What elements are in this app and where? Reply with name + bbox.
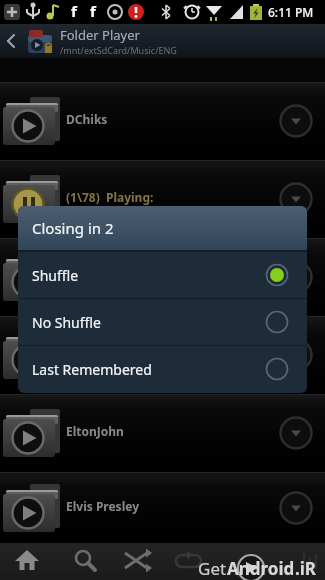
button[interactable]: Last Remembered: [18, 346, 307, 392]
button[interactable]: [0, 543, 55, 580]
button[interactable]: [0, 316, 325, 394]
button[interactable]: No Shuffle: [18, 299, 307, 345]
staticText: EltonJohn: [66, 423, 124, 439]
button[interactable]: [163, 543, 217, 580]
button[interactable]: [271, 543, 325, 580]
button[interactable]: DChiks: [0, 82, 325, 160]
staticText: Elvis Presley: [66, 498, 139, 514]
staticText: Closing in 2: [32, 218, 114, 238]
staticText: 6:11 PM: [268, 4, 314, 20]
button[interactable]: (1\78) Playing:: [0, 160, 325, 238]
button[interactable]: Folder Player: [0, 24, 325, 58]
button[interactable]: EltonJohn: [0, 394, 325, 472]
button[interactable]: [109, 543, 163, 580]
staticText: .iR: [295, 557, 317, 580]
staticText: DChiks: [66, 111, 108, 127]
staticText: Folder Player: [60, 26, 140, 44]
button[interactable]: [0, 238, 325, 316]
staticText: No Shuffle: [32, 313, 101, 332]
staticText: f: [90, 1, 96, 21]
staticText: /mnt/extSdCard/Music/ENG: [60, 44, 177, 56]
button[interactable]: Shuffle: [18, 252, 307, 298]
staticText: (1\78) Playing:: [66, 189, 154, 205]
staticText: Last Remembered: [32, 360, 152, 379]
staticText: Android: [227, 557, 295, 580]
button[interactable]: [217, 543, 271, 580]
staticText: Shuffle: [32, 266, 79, 285]
staticText: f: [71, 1, 77, 21]
button[interactable]: [55, 543, 109, 580]
staticText: Get: [198, 557, 227, 580]
button[interactable]: Elvis Presley: [0, 472, 325, 543]
